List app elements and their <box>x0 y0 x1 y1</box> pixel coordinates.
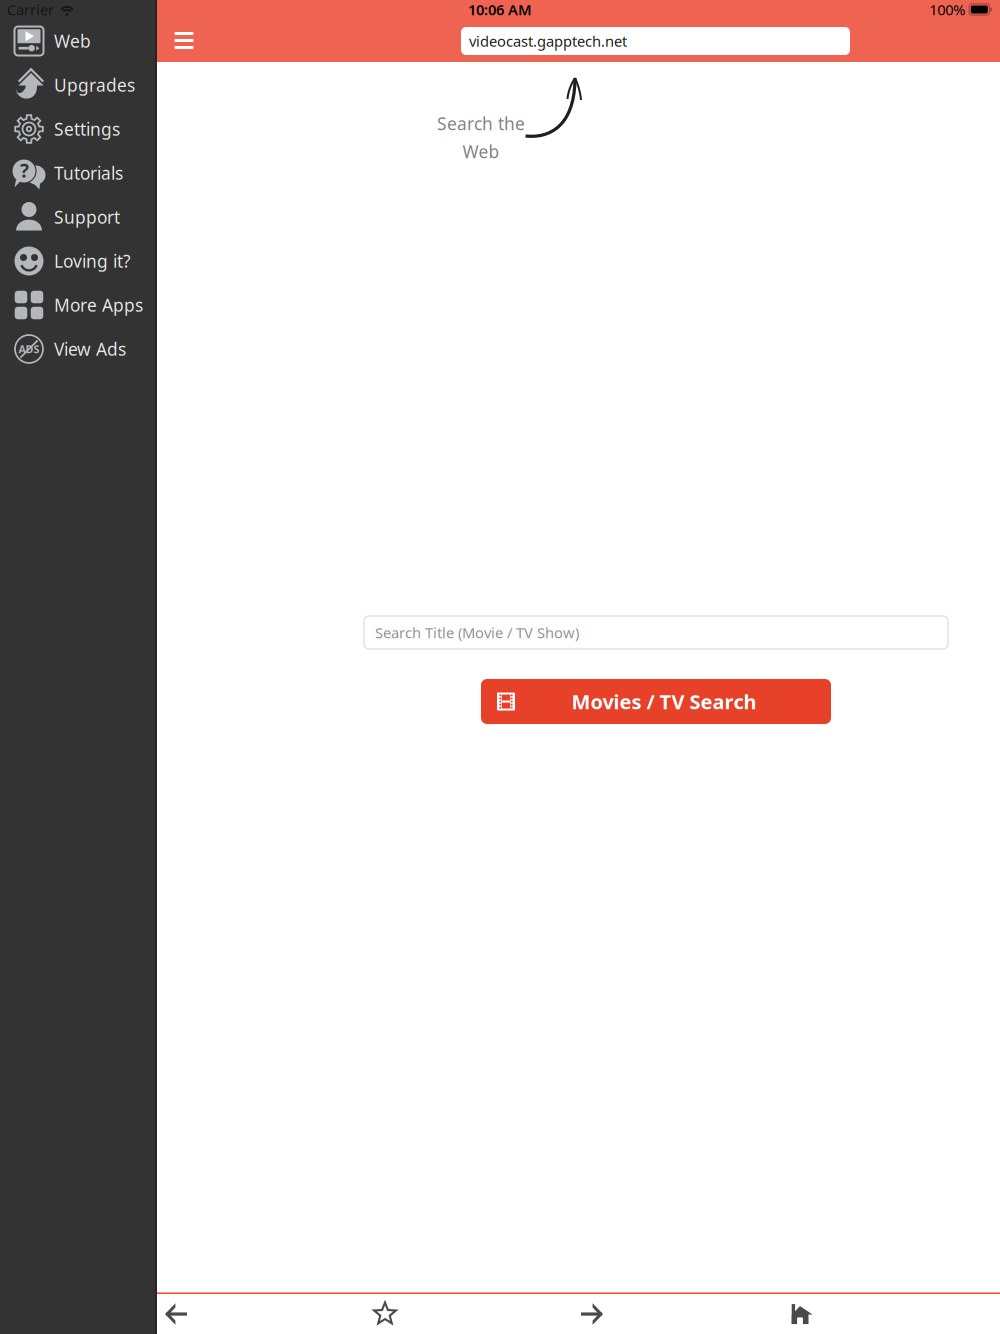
staticText: Search Title (Movie / TV Show) <box>375 623 579 642</box>
staticText: Settings <box>54 117 120 140</box>
staticText: Search the <box>437 112 525 135</box>
staticText: View Ads <box>54 337 126 360</box>
button[interactable]: Upgrades <box>0 63 155 107</box>
button[interactable]: Forward <box>566 1294 618 1334</box>
button[interactable]: Settings <box>0 107 155 151</box>
staticText: 10:06 AM <box>468 0 532 19</box>
staticText: More Apps <box>54 293 143 316</box>
button[interactable]: Home <box>774 1294 826 1334</box>
button[interactable]: Menu <box>162 19 206 62</box>
button[interactable]: More Apps <box>0 283 155 327</box>
staticText: Upgrades <box>54 73 135 96</box>
staticText: Loving it? <box>54 249 131 272</box>
staticText: Web <box>54 29 91 52</box>
staticText: Support <box>54 205 120 228</box>
button[interactable]: ? <box>0 151 155 195</box>
button[interactable]: Movies / TV Search <box>481 679 831 724</box>
button[interactable]: Bookmarks <box>359 1294 411 1334</box>
button[interactable]: Back <box>150 1294 202 1334</box>
button[interactable]: Support <box>0 195 155 239</box>
button[interactable]: videocast.gapptech.net <box>461 27 850 55</box>
staticText: 100% <box>929 0 965 19</box>
staticText: Movies / TV Search <box>571 688 756 715</box>
staticText: videocast.gapptech.net <box>469 31 627 51</box>
staticText: Tutorials <box>54 161 123 184</box>
button[interactable]: Web <box>0 19 155 63</box>
staticText: ? <box>20 158 29 183</box>
staticText: ADS <box>18 342 39 356</box>
button[interactable]: Loving it? <box>0 239 155 283</box>
staticText: Web <box>462 140 499 163</box>
staticText: Carrier <box>7 0 54 19</box>
button[interactable]: ADS <box>0 327 155 371</box>
button[interactable]: Search Title (Movie / TV Show) <box>364 616 948 649</box>
